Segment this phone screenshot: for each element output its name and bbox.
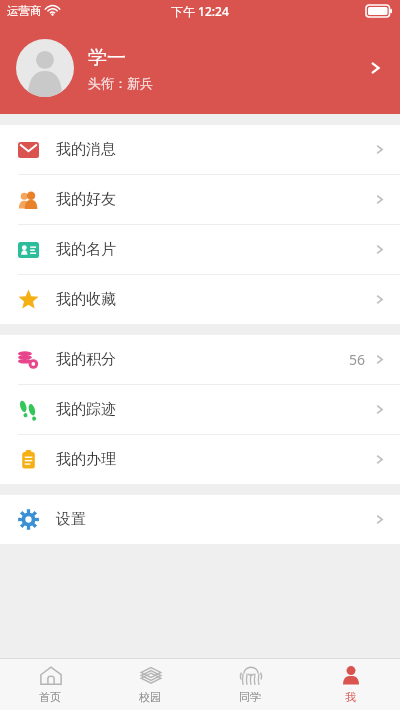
staticText: 我的办理 <box>56 450 116 469</box>
button[interactable]: 学一 <box>0 22 400 114</box>
staticText: 首页 <box>39 690 61 704</box>
staticText: 我的名片 <box>56 240 116 259</box>
staticText: 我 <box>345 690 356 704</box>
button[interactable]: 我的好友 <box>0 175 400 225</box>
staticText: 56 <box>349 350 366 369</box>
staticText: 学一 <box>88 46 126 70</box>
button[interactable]: 我的积分 <box>0 335 400 385</box>
staticText: 下午 12:24 <box>171 3 229 19</box>
staticText: 我的积分 <box>56 350 116 369</box>
staticText: 我的消息 <box>56 140 116 159</box>
button[interactable]: 设置 <box>0 495 400 544</box>
staticText: 我的收藏 <box>56 290 116 309</box>
button[interactable]: 我的消息 <box>0 125 400 175</box>
staticText: 运营商 <box>7 4 42 18</box>
staticText: 同学 <box>239 690 261 704</box>
button[interactable]: 同学 <box>200 659 300 710</box>
button[interactable]: 我 <box>300 659 400 710</box>
staticText: 头衔：新兵 <box>88 75 153 91</box>
button[interactable]: 我的收藏 <box>0 275 400 324</box>
staticText: 设置 <box>56 510 86 529</box>
button[interactable]: 我的名片 <box>0 225 400 275</box>
button[interactable]: 校园 <box>100 659 200 710</box>
staticText: 我的好友 <box>56 190 116 209</box>
staticText: 校园 <box>139 690 161 704</box>
button[interactable]: 我的踪迹 <box>0 385 400 435</box>
button[interactable]: 首页 <box>0 659 100 710</box>
staticText: 我的踪迹 <box>56 400 116 419</box>
button[interactable]: 我的办理 <box>0 435 400 484</box>
